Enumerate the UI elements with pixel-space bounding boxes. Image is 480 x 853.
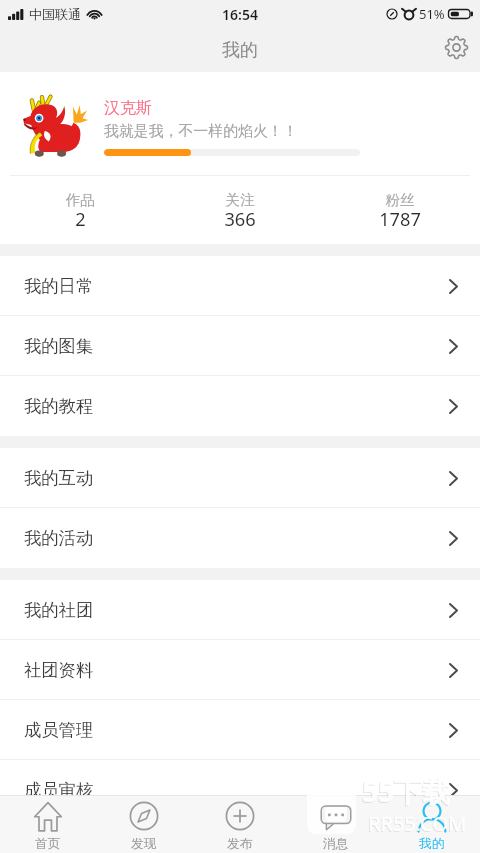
button[interactable]: 发现 xyxy=(96,796,192,853)
button[interactable]: 我的社团 xyxy=(0,580,480,640)
staticText: 我的 xyxy=(222,39,258,62)
staticText: 1787 xyxy=(379,207,421,232)
staticText: 16:54 xyxy=(222,5,258,24)
staticText: 51% xyxy=(419,5,445,23)
staticText: 发现 xyxy=(131,836,157,852)
button[interactable]: 成员管理 xyxy=(0,700,480,760)
button[interactable]: 我的互动 xyxy=(0,448,480,508)
button[interactable]: 作品 xyxy=(0,176,160,244)
staticText: RR55.COM xyxy=(368,810,467,837)
staticText: 作品 xyxy=(65,191,95,209)
staticText: 我的日常 xyxy=(24,275,94,297)
button[interactable]: Settings xyxy=(438,29,474,65)
staticText: 2 xyxy=(75,207,86,232)
staticText: 我的互动 xyxy=(24,467,94,489)
staticText: 首页 xyxy=(35,836,61,852)
staticText: 社团资料 xyxy=(24,659,94,681)
staticText: 55下载 xyxy=(362,772,451,810)
button[interactable]: 粉丝 xyxy=(320,176,480,244)
button[interactable]: 我的图集 xyxy=(0,316,480,376)
button[interactable]: 消息 xyxy=(288,796,384,853)
staticText: 我就是我，不一样的焰火！！ xyxy=(104,122,298,141)
button[interactable]: 我的活动 xyxy=(0,508,480,568)
staticText: 汉克斯 xyxy=(104,98,152,118)
staticText: 成员审核 xyxy=(24,779,94,801)
button[interactable]: 社团资料 xyxy=(0,640,480,700)
button[interactable]: 我的日常 xyxy=(0,256,480,316)
staticText: RR55.COM xyxy=(367,811,466,838)
button[interactable]: 我的教程 xyxy=(0,376,480,436)
staticText: 粉丝 xyxy=(385,191,415,209)
staticText: 关注 xyxy=(225,191,255,209)
button[interactable]: 成员审核 xyxy=(0,760,480,820)
staticText: 发布 xyxy=(227,836,253,852)
staticText: 中国联通 xyxy=(29,6,81,22)
staticText: 消息 xyxy=(323,836,349,852)
staticText: 我的社团 xyxy=(24,599,94,621)
staticText: 我的教程 xyxy=(24,395,94,417)
staticText: 366 xyxy=(224,207,256,232)
button[interactable]: 首页 xyxy=(0,796,96,853)
staticText: 我的图集 xyxy=(24,335,94,357)
staticText: 我的活动 xyxy=(24,527,94,549)
staticText: 我的 xyxy=(419,836,445,852)
staticText: 55下载 xyxy=(361,773,450,811)
staticText: 成员管理 xyxy=(24,719,94,741)
button[interactable]: 发布 xyxy=(192,796,288,853)
button[interactable]: 关注 xyxy=(160,176,320,244)
button[interactable]: 我的 xyxy=(384,796,480,853)
